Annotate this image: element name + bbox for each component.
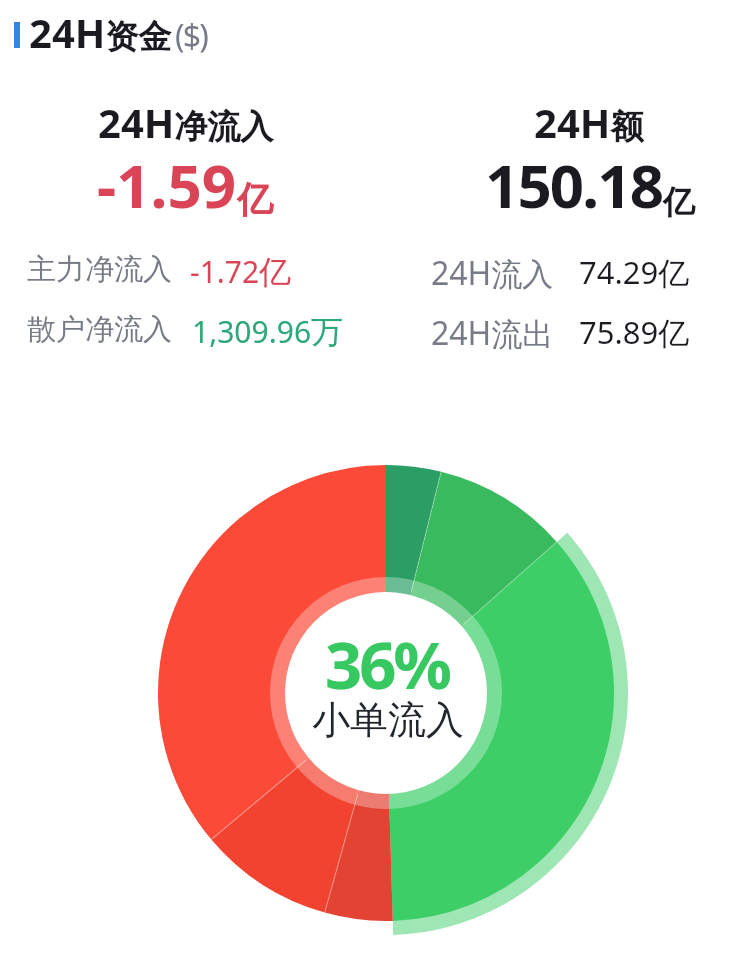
staticText: 24H流入 — [431, 251, 554, 295]
staticText: 74.29亿 — [579, 251, 690, 293]
staticText: 小单流入 — [312, 696, 464, 744]
staticText: 散户净流入 — [27, 311, 172, 348]
staticText: 150.18 — [485, 144, 663, 226]
staticText: -1.59 — [97, 144, 237, 226]
staticText: 1,309.96万 — [192, 311, 344, 353]
staticText: 24H资金 — [29, 5, 172, 59]
staticText: 24H净流入 — [98, 95, 274, 149]
staticText: 亿 — [237, 177, 273, 222]
staticText: 24H额 — [534, 95, 644, 149]
button[interactable]: 24H净流入 — [0, 88, 375, 368]
staticText: 24H流出 — [431, 311, 554, 355]
button[interactable]: 24H额 — [375, 88, 750, 368]
button[interactable]: 24H资金 — [0, 0, 750, 72]
staticText: 主力净流入 — [27, 251, 172, 288]
staticText: 亿 — [663, 182, 695, 222]
button[interactable]: 24H 资金流向占比图，小单流入 36% — [144, 451, 628, 935]
staticText: 36% — [325, 620, 449, 709]
staticText: -1.72亿 — [190, 251, 292, 293]
staticText: ($) — [175, 14, 208, 58]
staticText: 75.89亿 — [579, 311, 690, 353]
